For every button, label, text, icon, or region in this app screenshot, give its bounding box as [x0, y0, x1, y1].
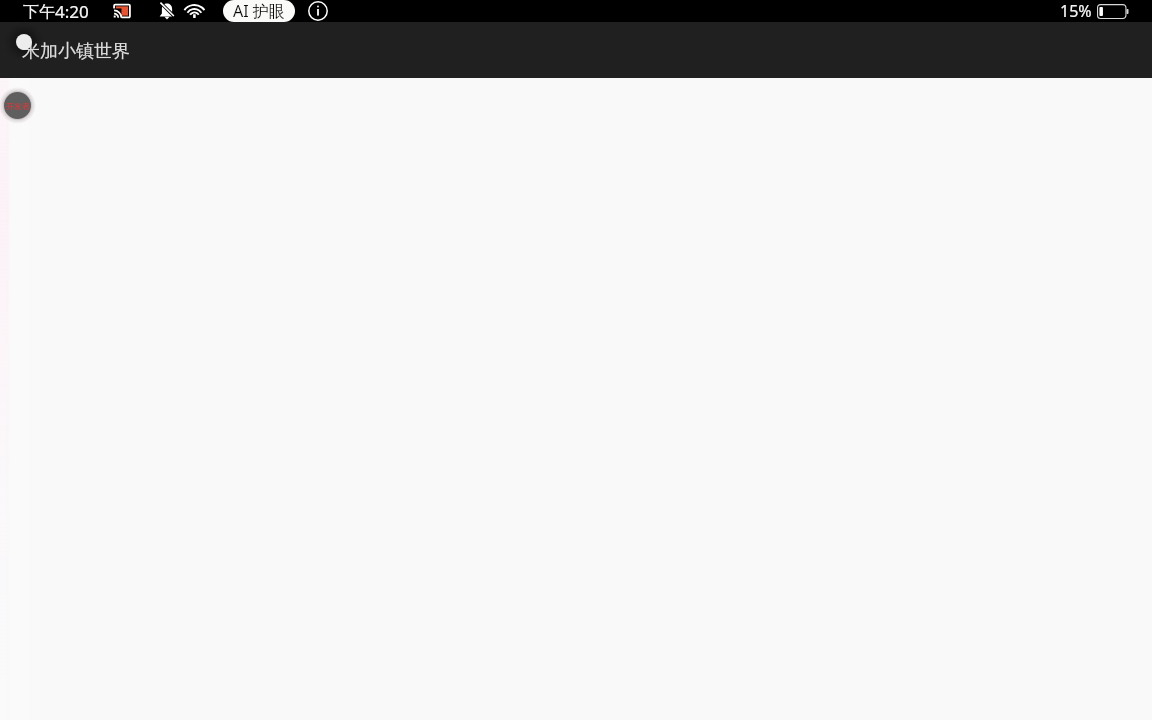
- button[interactable]: Floating menu: [4, 92, 31, 119]
- staticText: 4:20: [55, 0, 89, 22]
- button[interactable]: 米加小镇世界: [0, 22, 1152, 78]
- button[interactable]: Notifications off: [159, 1, 175, 21]
- staticText: 下午: [23, 2, 55, 22]
- button[interactable]: Information: [308, 1, 328, 21]
- staticText: AI 护眼: [233, 0, 285, 22]
- button[interactable]: AI 护眼: [223, 0, 295, 22]
- staticText: 开发者: [6, 101, 30, 111]
- staticText: 15%: [1060, 0, 1092, 22]
- button[interactable]: Wi-Fi: [184, 1, 204, 21]
- staticText: 米加小镇世界: [22, 40, 130, 63]
- button[interactable]: Cast: [113, 3, 131, 19]
